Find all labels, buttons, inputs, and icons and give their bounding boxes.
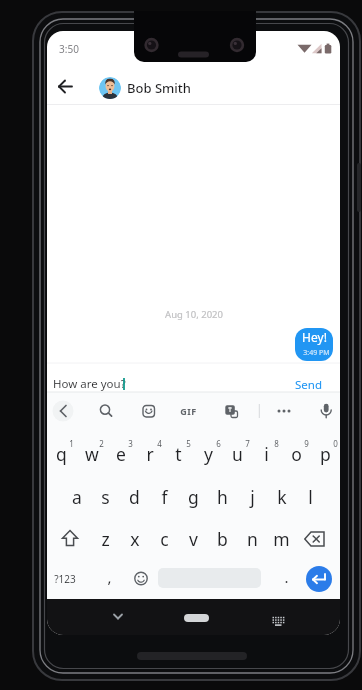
button[interactable] bbox=[164, 438, 193, 471]
staticText: 3:50 bbox=[59, 42, 79, 56]
staticText: j bbox=[250, 485, 255, 509]
staticText: c bbox=[160, 527, 169, 551]
button[interactable] bbox=[296, 482, 325, 515]
staticText: o bbox=[291, 442, 302, 466]
button[interactable] bbox=[179, 524, 208, 557]
staticText: a bbox=[72, 485, 82, 509]
button[interactable] bbox=[314, 398, 338, 424]
button[interactable] bbox=[55, 524, 85, 554]
button[interactable] bbox=[47, 438, 76, 471]
button[interactable] bbox=[194, 438, 223, 471]
staticText: x bbox=[130, 527, 140, 551]
staticText: i bbox=[264, 442, 269, 466]
button[interactable] bbox=[252, 438, 281, 471]
button[interactable] bbox=[311, 438, 340, 471]
staticText: 5 bbox=[186, 438, 191, 449]
staticText: g bbox=[188, 485, 199, 509]
staticText: z bbox=[101, 527, 110, 551]
button[interactable] bbox=[295, 328, 333, 361]
button[interactable] bbox=[136, 398, 160, 424]
button[interactable] bbox=[93, 398, 117, 424]
button[interactable] bbox=[120, 524, 149, 557]
staticText: r bbox=[146, 442, 154, 466]
button[interactable] bbox=[271, 398, 297, 424]
staticText: n bbox=[247, 527, 258, 551]
staticText: Hey! bbox=[302, 329, 327, 345]
staticText: 8 bbox=[274, 438, 279, 449]
staticText: 0 bbox=[333, 438, 338, 449]
button[interactable] bbox=[267, 524, 296, 557]
staticText: h bbox=[217, 485, 228, 509]
staticText: q bbox=[56, 442, 67, 466]
staticText: 3:49 PM bbox=[303, 348, 330, 358]
staticText: l bbox=[308, 485, 313, 509]
staticText: GIF bbox=[180, 405, 197, 417]
staticText: v bbox=[189, 527, 198, 551]
button[interactable] bbox=[62, 482, 91, 515]
button[interactable] bbox=[208, 524, 237, 557]
staticText: w bbox=[85, 442, 99, 466]
button[interactable] bbox=[135, 438, 164, 471]
button[interactable] bbox=[302, 524, 332, 554]
staticText: Send bbox=[295, 377, 322, 393]
button[interactable] bbox=[106, 438, 135, 471]
staticText: u bbox=[232, 442, 243, 466]
button[interactable] bbox=[150, 524, 179, 557]
button[interactable] bbox=[91, 482, 120, 515]
staticText: e bbox=[116, 442, 126, 466]
button[interactable] bbox=[179, 482, 208, 515]
button[interactable]: ?123 bbox=[48, 568, 82, 590]
button[interactable] bbox=[91, 524, 120, 557]
staticText: , bbox=[107, 567, 112, 587]
staticText: f bbox=[161, 485, 168, 509]
staticText: 1 bbox=[69, 438, 74, 449]
button[interactable] bbox=[281, 438, 310, 471]
staticText: ?123 bbox=[54, 572, 76, 586]
button[interactable]: Send bbox=[275, 372, 340, 397]
button[interactable] bbox=[120, 482, 149, 515]
staticText: Aug 10, 2020 bbox=[165, 308, 223, 321]
staticText: 9 bbox=[304, 438, 309, 449]
staticText: Bob Smith bbox=[127, 79, 191, 97]
button[interactable] bbox=[267, 482, 296, 515]
button[interactable] bbox=[176, 398, 202, 424]
staticText: 6 bbox=[216, 438, 221, 449]
staticText: b bbox=[217, 527, 228, 551]
button[interactable] bbox=[97, 75, 197, 101]
staticText: p bbox=[320, 442, 331, 466]
button[interactable] bbox=[51, 72, 81, 102]
button[interactable] bbox=[263, 604, 293, 630]
button[interactable] bbox=[128, 565, 154, 591]
staticText: k bbox=[277, 485, 287, 509]
staticText: 2 bbox=[99, 438, 104, 449]
button[interactable] bbox=[306, 566, 332, 592]
staticText: 7 bbox=[245, 438, 250, 449]
button[interactable] bbox=[150, 482, 179, 515]
button[interactable] bbox=[223, 438, 252, 471]
button[interactable] bbox=[237, 482, 266, 515]
button[interactable] bbox=[208, 482, 237, 515]
staticText: How are you? bbox=[53, 376, 126, 392]
staticText: y bbox=[204, 442, 213, 466]
staticText: 4 bbox=[157, 438, 162, 449]
button[interactable] bbox=[238, 524, 267, 557]
staticText: . bbox=[284, 567, 289, 587]
button[interactable] bbox=[76, 438, 105, 471]
button[interactable]: . bbox=[276, 560, 296, 593]
staticText: t bbox=[175, 442, 182, 466]
staticText: d bbox=[129, 485, 140, 509]
staticText: s bbox=[101, 485, 110, 509]
button[interactable] bbox=[51, 398, 75, 424]
staticText: 3 bbox=[128, 438, 133, 449]
button[interactable] bbox=[184, 614, 209, 622]
staticText: m bbox=[273, 527, 290, 551]
button[interactable] bbox=[218, 398, 244, 424]
button[interactable]: , bbox=[99, 560, 119, 593]
button[interactable] bbox=[103, 604, 133, 630]
